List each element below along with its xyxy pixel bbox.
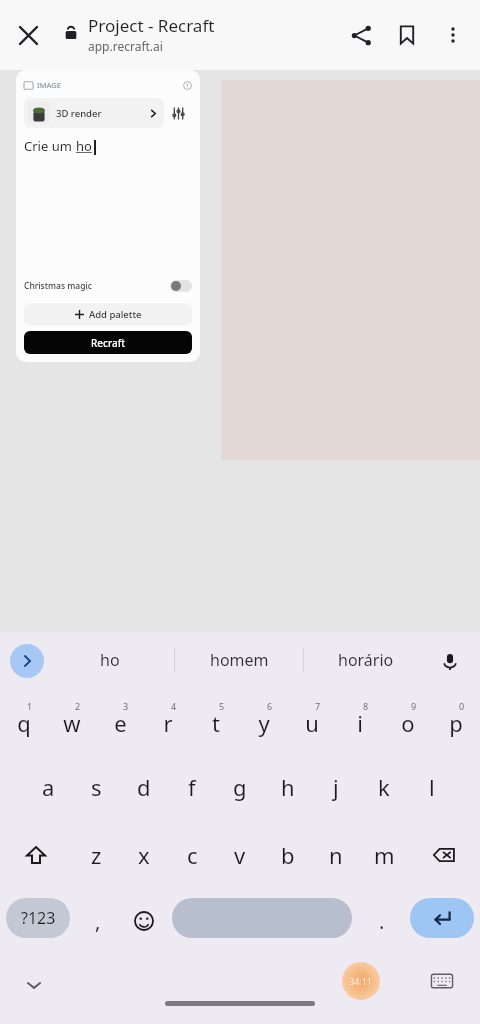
button[interactable]: ?123 [6,898,70,938]
button[interactable]: Emoji [122,890,166,952]
button[interactable]: ho [58,640,162,680]
staticText: 2 [75,700,81,712]
staticText: 3D render [56,107,102,120]
staticText: horário [338,649,394,671]
staticText: y [258,708,270,738]
staticText: o [401,708,415,738]
staticText: p [449,708,463,738]
button[interactable]: s [72,754,120,820]
button[interactable]: Expand toolbar [10,644,44,678]
staticText: z [91,840,102,870]
staticText: Recraft [91,336,126,350]
button[interactable]: b [264,820,312,890]
staticText: q [17,708,31,738]
button[interactable]: Bookmark [384,12,430,58]
button[interactable]: l [408,754,456,820]
button[interactable]: n [312,820,360,890]
button[interactable]: a [24,754,72,820]
button[interactable]: u [288,692,336,754]
button[interactable]: Close [8,15,48,55]
staticText: homem [210,649,269,671]
button[interactable]: r [144,692,192,754]
button[interactable]: Voice input [432,644,468,680]
button[interactable]: horário [314,640,418,680]
staticText: a [42,772,55,802]
button[interactable]: j [312,754,360,820]
button[interactable]: h [264,754,312,820]
button[interactable]: Share [338,12,384,58]
staticText: ?123 [21,907,56,929]
button[interactable]: p [432,692,480,754]
button[interactable]: g [216,754,264,820]
button[interactable]: i [336,692,384,754]
button[interactable]: f [168,754,216,820]
button[interactable]: y [240,692,288,754]
button[interactable]: o [384,692,432,754]
button[interactable]: Settings [164,98,192,128]
staticText: u [305,708,319,738]
staticText: e [114,708,127,738]
button[interactable]: Enter [410,898,474,938]
staticText: Add palette [89,308,142,321]
staticText: x [138,840,150,870]
staticText: Project - Recraft [88,14,215,37]
staticText: h [281,772,295,802]
staticText: r [163,708,173,738]
button[interactable]: w [48,692,96,754]
button[interactable]: x [120,820,168,890]
staticText: i [357,708,363,738]
button[interactable]: m [360,820,408,890]
button[interactable]: Change keyboard [424,966,460,996]
button[interactable]: k [360,754,408,820]
staticText: 5 [219,700,225,712]
staticText: g [233,772,247,802]
staticText: v [234,840,246,870]
button[interactable]: d [120,754,168,820]
staticText: t [212,708,220,738]
staticText: 6 [267,700,273,712]
staticText: 8 [363,700,369,712]
button[interactable]: c [168,820,216,890]
staticText: b [281,840,295,870]
button[interactable]: Hide keyboard [14,965,54,1005]
button[interactable]: v [216,820,264,890]
button[interactable]: . [360,890,404,952]
button[interactable]: homem [187,640,291,680]
staticText: 3 [123,700,129,712]
button[interactable]: Add palette [24,303,192,325]
staticText: n [329,840,343,870]
button[interactable]: , [76,890,120,952]
button[interactable]: Space [172,898,352,938]
staticText: s [91,772,102,802]
staticText: l [429,772,435,802]
staticText: , [95,908,101,935]
staticText: Crie um [24,137,76,155]
button[interactable]: e [96,692,144,754]
button[interactable]: More options [430,12,476,58]
button[interactable]: t [192,692,240,754]
button[interactable]: Recraft [24,331,192,354]
button[interactable]: Shift [12,820,60,890]
button[interactable]: 3D render [24,98,164,128]
staticText: c [187,840,198,870]
staticText: 34:11 [349,975,373,987]
staticText: ho [100,649,120,671]
staticText: app.recraft.ai [88,38,163,54]
staticText: ho [76,137,92,155]
button[interactable]: z [72,820,120,890]
staticText: 0 [459,700,465,712]
staticText: IMAGE [37,80,61,90]
staticText: Christmas magic [24,280,92,292]
staticText: 1 [27,700,33,712]
staticText: . [379,908,385,935]
button[interactable]: q [0,692,48,754]
staticText: 4 [171,700,177,712]
staticText: k [378,772,390,802]
staticText: 9 [411,700,417,712]
button[interactable]: Christmas magic [24,275,192,297]
staticText: m [374,840,395,870]
staticText: f [188,772,196,802]
staticText: j [333,772,339,802]
button[interactable]: Backspace [420,820,468,890]
staticText: d [137,772,151,802]
